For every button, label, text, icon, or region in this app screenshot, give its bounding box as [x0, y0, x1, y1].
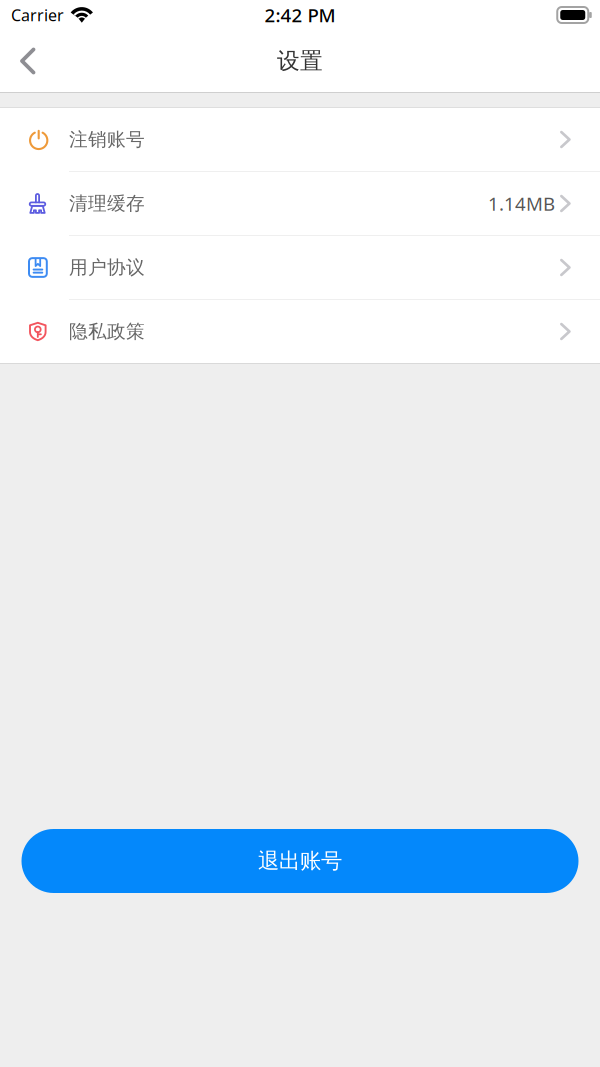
button[interactable]: Back — [0, 32, 60, 90]
staticText: 隐私政策 — [69, 320, 145, 343]
staticText: 清理缓存 — [69, 192, 145, 215]
button[interactable]: 退出账号 — [21, 829, 578, 893]
staticText: 用户协议 — [69, 256, 145, 279]
button[interactable]: 清理缓存 — [0, 172, 600, 236]
button[interactable]: 隐私政策 — [0, 300, 600, 363]
button[interactable]: 用户协议 — [0, 236, 600, 300]
staticText: 设置 — [277, 47, 323, 75]
staticText: 1.14MB — [488, 191, 555, 216]
staticText: 退出账号 — [258, 848, 342, 874]
staticText: 注销账号 — [69, 128, 145, 151]
button[interactable]: 注销账号 — [0, 108, 600, 172]
staticText: Carrier — [11, 4, 64, 26]
staticText: 2:42 PM — [264, 3, 335, 27]
